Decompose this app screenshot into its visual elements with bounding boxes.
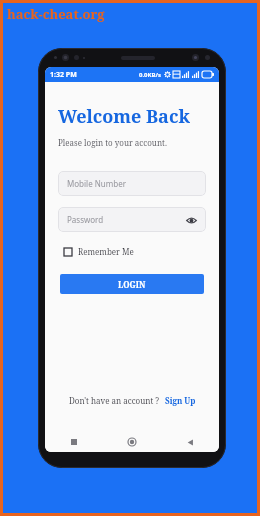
- staticText: hack-cheat.org: [7, 5, 105, 23]
- staticText: Mobile Number: [67, 178, 126, 189]
- staticText: LOGIN: [118, 279, 146, 290]
- staticText: Welcome Back: [58, 104, 190, 129]
- button[interactable]: Recent apps: [45, 432, 103, 452]
- staticText: Sign Up: [165, 395, 196, 406]
- staticText: Please login to your account.: [58, 137, 167, 148]
- staticText: 0.0KB/s: [139, 71, 162, 79]
- staticText: Remember Me: [78, 246, 134, 257]
- button[interactable]: Home: [103, 432, 161, 452]
- button[interactable]: Password: [58, 207, 206, 232]
- staticText: Don't have an account ?: [69, 395, 160, 406]
- button[interactable]: Back: [161, 432, 219, 452]
- button[interactable]: LOGIN: [60, 274, 204, 294]
- button[interactable]: Mobile Number: [58, 171, 206, 196]
- button[interactable]: Show password: [185, 214, 197, 226]
- staticText: Password: [67, 214, 104, 225]
- button[interactable]: Sign Up: [165, 395, 196, 406]
- button[interactable]: Remember Me: [64, 246, 134, 257]
- staticText: 1:32 PM: [50, 70, 77, 80]
